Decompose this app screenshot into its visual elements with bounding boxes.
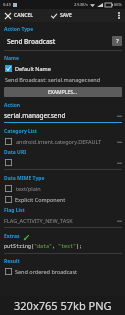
staticText: Result (4, 258, 20, 265)
button[interactable]: text/plain (4, 185, 122, 192)
staticText: 66% (114, 2, 122, 7)
button[interactable]: Explicit Component (4, 196, 122, 203)
staticText: SAVE (60, 12, 72, 19)
button[interactable]: android.intent.category.DEFAULT (4, 138, 122, 145)
button[interactable]: FLAG_ACTIVITY_NEW_TASK (4, 217, 122, 224)
staticText: Explicit Component (15, 196, 66, 203)
staticText: Flag List (4, 207, 25, 214)
staticText: android.intent.category.DEFAULT (16, 138, 117, 145)
staticText: Default Name (15, 65, 51, 72)
button[interactable] (4, 159, 122, 166)
staticText: FLAG_ACTIVITY_NEW_TASK (4, 217, 117, 224)
staticText: 320x765 57kb PNG (14, 298, 112, 313)
staticText: Data MIME Type (4, 175, 45, 182)
staticText: CANCEL (14, 12, 33, 19)
staticText: serial.manager.send (4, 111, 117, 120)
staticText: Action Type (4, 26, 34, 33)
button[interactable]: Help (112, 36, 122, 46)
staticText: Send Broadcast (7, 37, 112, 46)
button[interactable]: EXAMPLES... (4, 87, 122, 97)
staticText: Category List (4, 128, 38, 135)
staticText: Action (4, 102, 21, 109)
button[interactable]: Send ordered broadcast (4, 268, 122, 275)
button[interactable]: Default Name (4, 65, 122, 72)
staticText: ? (116, 37, 119, 45)
button[interactable]: Send Broadcast (4, 36, 122, 46)
button[interactable]: More options (113, 9, 125, 22)
button[interactable]: serial.manager.send (4, 111, 122, 120)
staticText: putString("data", "test"); (4, 243, 83, 250)
button[interactable]: Edit extras (23, 234, 29, 240)
staticText: text/plain (16, 185, 41, 192)
staticText: Data URI (4, 149, 27, 156)
staticText: Send ordered broadcast (15, 268, 78, 275)
staticText: Extras (4, 233, 20, 240)
button[interactable]: SAVE (46, 9, 77, 22)
staticText: EXAMPLES... (48, 89, 78, 96)
staticText: Name (4, 55, 19, 62)
staticText: 0:45 (3, 2, 11, 7)
staticText: 2.53K/s (74, 2, 88, 7)
button[interactable]: CANCEL (0, 9, 38, 22)
button[interactable]: putString("data", "test"); (4, 243, 122, 250)
staticText: Send Broadcast: serial.manager.send (5, 76, 101, 83)
